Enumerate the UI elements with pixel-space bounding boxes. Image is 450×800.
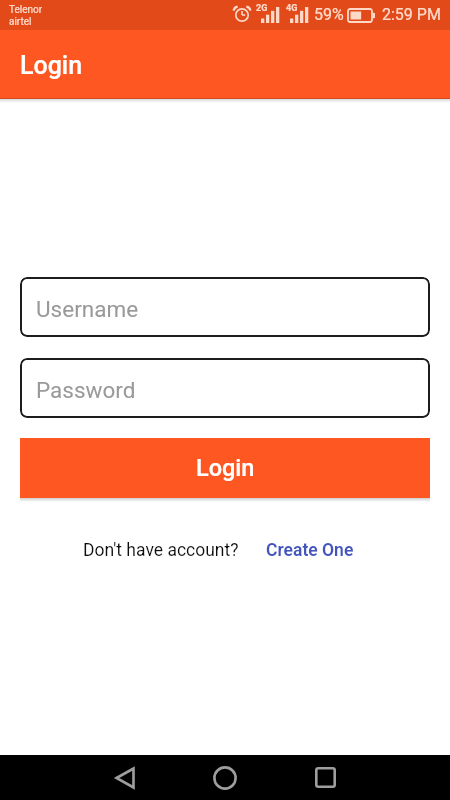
staticText: Don't have account? [83,540,239,561]
button[interactable]: Create One [266,540,354,561]
button[interactable]: Username [20,277,430,337]
staticText: Create One [266,540,354,561]
staticText: 2:59 PM [382,5,441,24]
staticText: 59% [314,5,344,24]
button[interactable]: Home [201,755,249,800]
staticText: Login [196,454,255,482]
button[interactable]: Password [20,358,430,418]
button[interactable]: Login [20,438,430,498]
staticText: airtel [9,16,32,28]
staticText: Password [36,377,136,403]
staticText: Telenor [9,4,43,16]
staticText: 4G [286,3,298,14]
staticText: Login [20,51,83,80]
button[interactable]: Back [101,755,149,800]
button[interactable]: Recents [301,755,349,800]
staticText: 2G [256,3,268,14]
staticText: Username [36,296,139,322]
